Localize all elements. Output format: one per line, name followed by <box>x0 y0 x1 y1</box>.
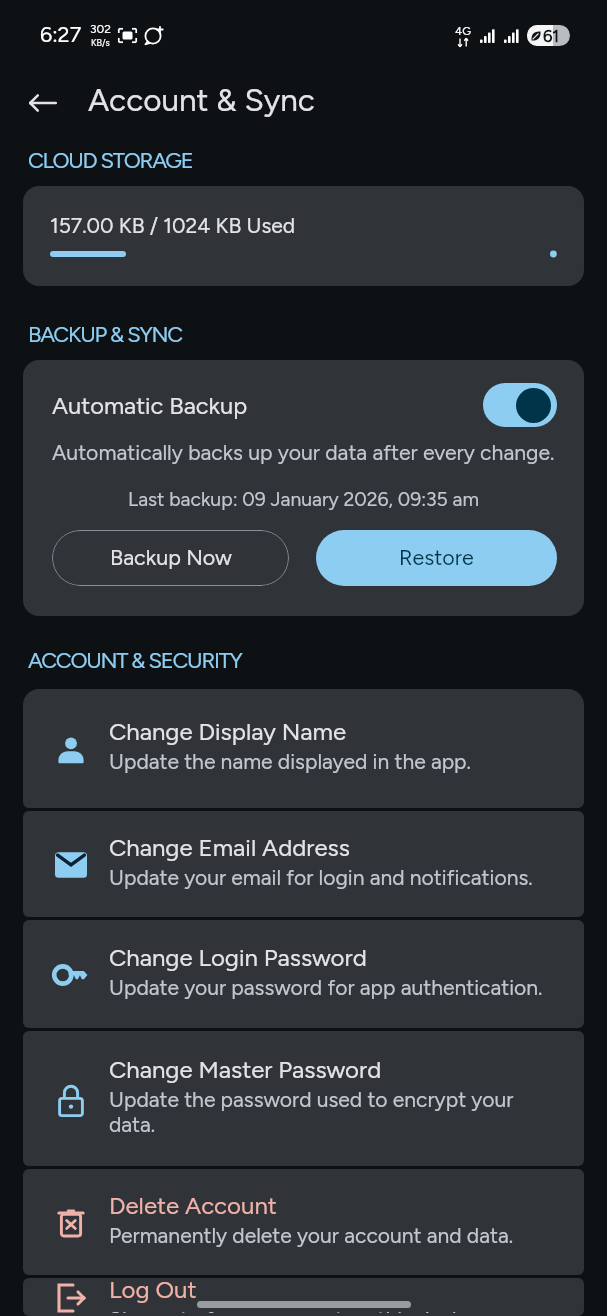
staticText: Automatic Backup <box>52 391 248 419</box>
staticText: Last backup: 09 January 2026, 09:35 am <box>52 488 555 511</box>
staticText: Automatically backs up your data after e… <box>52 440 555 465</box>
button[interactable]: Automatic Backup toggle <box>483 383 557 427</box>
staticText: Update your password for app authenticat… <box>109 975 543 1000</box>
button[interactable]: Change Login Password <box>23 920 584 1028</box>
staticText: Change Display Name <box>109 717 347 746</box>
staticText: Log Out <box>109 1278 197 1304</box>
staticText: KB/s <box>91 37 110 48</box>
staticText: Change Login Password <box>109 943 367 972</box>
button[interactable]: Delete Account <box>23 1169 584 1275</box>
staticText: 61 <box>543 26 560 46</box>
staticText: Update the password used to encrypt your… <box>109 1087 558 1137</box>
staticText: Restore <box>399 545 474 571</box>
staticText: ACCOUNT & SECURITY <box>28 647 242 673</box>
staticText: 4G <box>455 24 471 38</box>
button[interactable]: Change Email Address <box>23 811 584 917</box>
button[interactable]: Back <box>20 80 66 126</box>
button[interactable]: Backup Now <box>52 530 289 586</box>
staticText: Update your email for login and notifica… <box>109 865 533 890</box>
button[interactable]: Restore <box>316 530 557 586</box>
staticText: 6:27 <box>40 22 82 48</box>
staticText: 157.00 KB / 1024 KB Used <box>50 213 296 238</box>
staticText: 302 <box>90 22 111 36</box>
button[interactable]: Log Out <box>23 1278 584 1316</box>
staticText: Update the name displayed in the app. <box>109 749 471 774</box>
staticText: Sign out of your account on this device. <box>109 1307 485 1313</box>
staticText: CLOUD STORAGE <box>28 147 193 173</box>
staticText: Account & Sync <box>88 81 315 119</box>
button[interactable]: 157.00 KB / 1024 KB Used <box>23 186 584 286</box>
staticText: Change Email Address <box>109 833 350 862</box>
staticText: Backup Now <box>110 545 232 571</box>
staticText: Delete Account <box>109 1191 277 1220</box>
staticText: Change Master Password <box>109 1055 382 1084</box>
button[interactable]: Change Master Password <box>23 1031 584 1166</box>
staticText: BACKUP & SYNC <box>28 321 182 347</box>
staticText: Permanently delete your account and data… <box>109 1223 514 1248</box>
button[interactable]: Change Display Name <box>23 689 584 808</box>
